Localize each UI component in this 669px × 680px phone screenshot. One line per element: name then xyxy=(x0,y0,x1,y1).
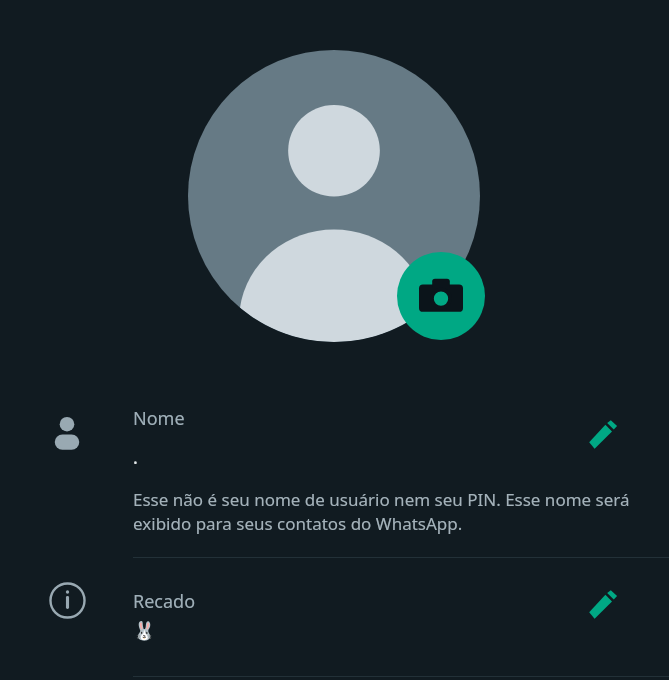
button[interactable]: Recado xyxy=(0,559,669,677)
staticText: Nome xyxy=(133,406,185,431)
button[interactable]: Change profile photo xyxy=(397,252,485,340)
button[interactable]: Edit status xyxy=(578,580,628,630)
button[interactable]: Nome xyxy=(0,390,669,558)
staticText: Esse não é seu nome de usuário nem seu P… xyxy=(133,488,631,535)
staticText: Recado xyxy=(133,589,196,614)
button[interactable]: Profile photo xyxy=(188,50,480,342)
staticText: 🐰 xyxy=(133,620,156,641)
staticText: . xyxy=(133,445,138,470)
button[interactable]: Edit name xyxy=(578,410,628,460)
